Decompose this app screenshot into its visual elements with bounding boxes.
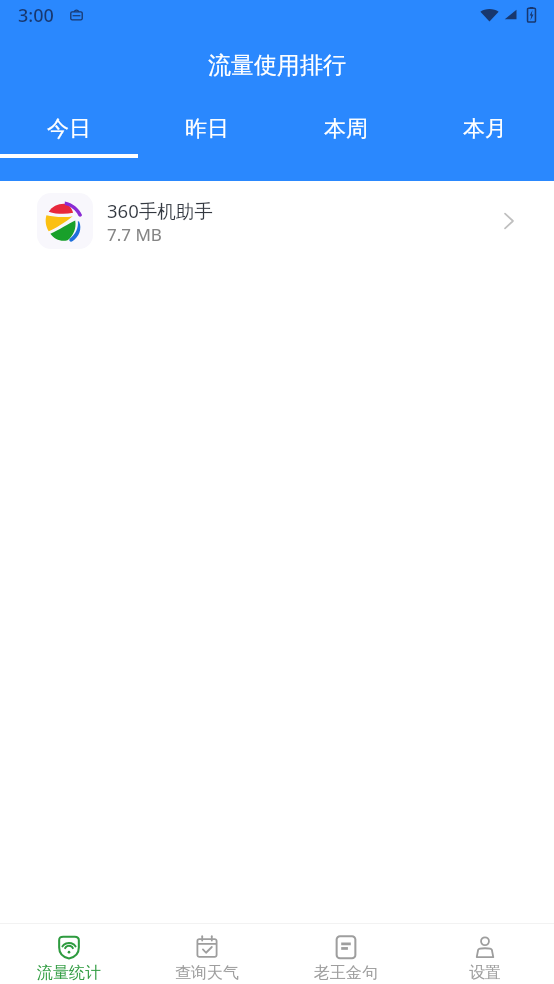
- button[interactable]: 查询天气: [138, 924, 276, 984]
- staticText: 3:00: [18, 3, 54, 28]
- staticText: 流量使用排行: [208, 51, 346, 80]
- staticText: 老王金句: [314, 963, 378, 983]
- other: View details: [504, 213, 514, 229]
- staticText: 本周: [324, 115, 368, 143]
- staticText: 今日: [47, 115, 91, 143]
- button[interactable]: 今日: [0, 102, 138, 181]
- button[interactable]: 老王金句: [276, 924, 415, 984]
- staticText: 昨日: [185, 115, 229, 143]
- button[interactable]: 昨日: [138, 102, 276, 181]
- button[interactable]: 360手机助手: [0, 181, 554, 261]
- staticText: 设置: [469, 963, 501, 983]
- staticText: 流量统计: [37, 963, 101, 983]
- staticText: 7.7 MB: [107, 223, 162, 246]
- button[interactable]: 设置: [415, 924, 554, 984]
- button[interactable]: 本周: [276, 102, 415, 181]
- staticText: 360手机助手: [107, 198, 213, 223]
- staticText: 本月: [463, 115, 507, 143]
- staticText: 查询天气: [175, 963, 239, 983]
- button[interactable]: 本月: [415, 102, 554, 181]
- button[interactable]: 流量统计: [0, 924, 138, 984]
